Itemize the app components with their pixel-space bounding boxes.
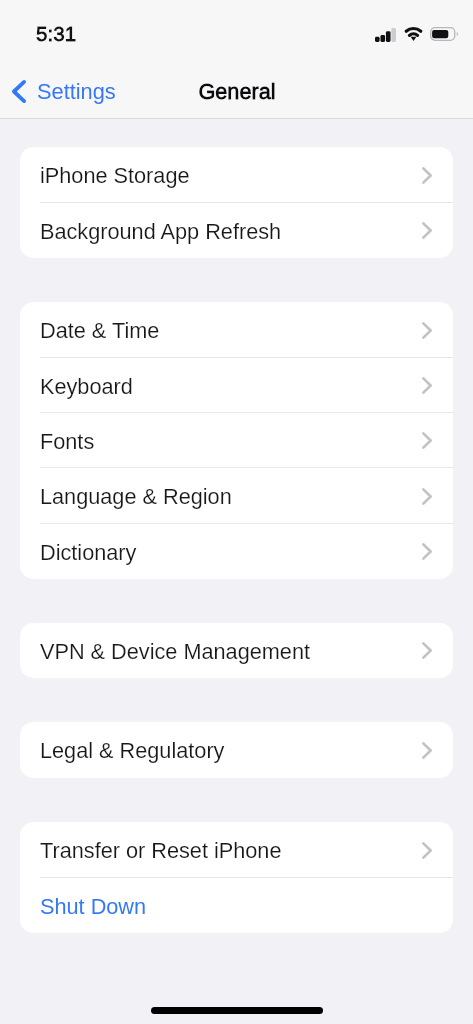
button[interactable]: Keyboard — [20, 358, 453, 413]
button[interactable]: Transfer or Reset iPhone — [20, 822, 453, 878]
staticText: Transfer or Reset iPhone — [40, 838, 282, 862]
button[interactable]: Shut Down — [20, 878, 453, 933]
button[interactable]: Language & Region — [20, 468, 453, 524]
staticText: VPN & Device Management — [40, 639, 311, 663]
staticText: Date & Time — [40, 318, 160, 342]
staticText: Fonts — [40, 429, 95, 453]
staticText: Background App Refresh — [40, 219, 282, 243]
staticText: iPhone Storage — [40, 163, 190, 187]
staticText: Language & Region — [40, 484, 232, 508]
button[interactable]: Legal & Regulatory — [20, 722, 453, 778]
button[interactable]: Dictionary — [20, 524, 453, 579]
button[interactable]: Background App Refresh — [20, 203, 453, 258]
staticText: General — [198, 79, 276, 103]
staticText: 5:31 — [36, 22, 77, 45]
button[interactable]: Settings — [0, 73, 126, 109]
staticText: Legal & Regulatory — [40, 738, 225, 762]
staticText: Settings — [37, 79, 116, 103]
staticText: Dictionary — [40, 540, 137, 564]
staticText: Keyboard — [40, 374, 133, 398]
button[interactable]: Date & Time — [20, 302, 453, 358]
staticText: Shut Down — [40, 894, 147, 918]
button[interactable]: iPhone Storage — [20, 147, 453, 203]
button[interactable]: Fonts — [20, 413, 453, 468]
button[interactable]: VPN & Device Management — [20, 623, 453, 678]
